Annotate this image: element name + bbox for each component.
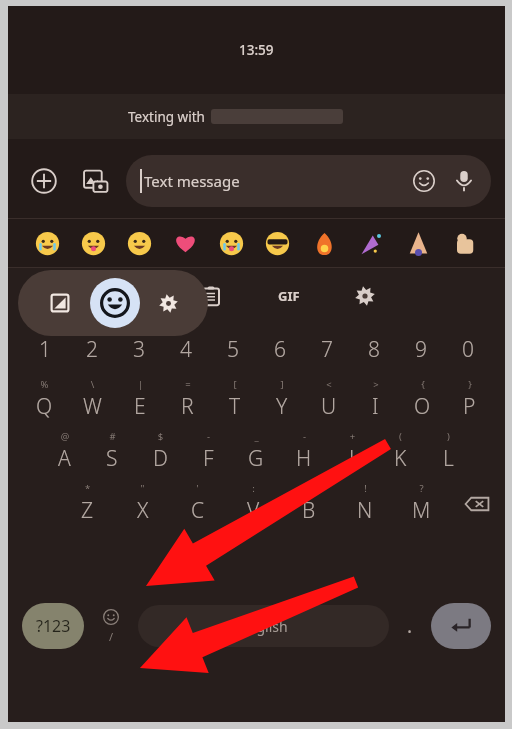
button[interactable]: [ [211,374,258,426]
button[interactable]: Enter [431,603,491,649]
staticText: _ [243,430,270,443]
button[interactable] [208,219,254,267]
staticText: 9 [415,335,427,364]
staticText: A [58,444,71,473]
staticText: { [410,378,436,391]
button[interactable]: 2 [68,324,115,374]
staticText: M [412,496,431,525]
button[interactable]: _ [232,426,280,478]
button[interactable]: Emoji keyboard [84,601,138,651]
button[interactable]: + [328,426,376,478]
button[interactable]: Switch keyboard [42,285,78,321]
button[interactable]: > [352,374,399,426]
button[interactable]: Emoji [90,278,140,328]
button[interactable]: ; [281,478,337,530]
button[interactable]: 4 [162,324,209,374]
button[interactable]: ?123 [22,603,84,649]
staticText: 3 [133,335,145,364]
staticText: H [296,444,312,473]
staticText: ( [387,430,414,443]
button[interactable]: Clipboard [190,275,232,317]
button[interactable]: ) [424,426,472,478]
staticText: " [127,482,158,495]
button[interactable]: Settings [344,275,386,317]
button[interactable]: 6 [256,324,303,374]
button[interactable]: } [446,374,493,426]
button[interactable] [70,219,116,267]
staticText: + [339,430,366,443]
button[interactable]: | [116,374,164,426]
button[interactable]: 8 [350,324,397,374]
button[interactable]: Emoji [409,166,439,196]
button[interactable]: ' [170,478,225,530]
button[interactable]: - [184,426,232,478]
button[interactable] [348,219,395,267]
button[interactable]: GIF [266,273,312,319]
staticText: S [106,444,118,473]
button[interactable]: 5 [209,324,256,374]
button[interactable]: Gallery [74,159,118,203]
button[interactable]: " [115,478,170,530]
button[interactable]: 9 [397,324,444,374]
staticText: / [109,629,114,644]
staticText: X [137,496,149,525]
button[interactable]: ! [337,478,393,530]
staticText: ] [269,378,295,391]
button[interactable]: 3 [115,324,162,374]
button[interactable]: # [88,426,136,478]
button[interactable]: ? [393,478,449,530]
button[interactable] [301,219,348,267]
button[interactable]: English [138,605,389,647]
button[interactable]: 7 [303,324,350,374]
staticText: O [414,392,431,421]
staticText: 7 [321,335,333,364]
button[interactable]: Voice input [449,166,479,196]
button[interactable]: . [389,601,431,651]
button[interactable]: { [399,374,446,426]
button[interactable]: 1 [22,324,68,374]
button[interactable]: ( [376,426,424,478]
staticText: N [357,496,373,525]
button[interactable]: Toolbar [30,275,72,317]
staticText: 2 [86,335,98,364]
staticText: J [349,444,355,473]
staticText: F [203,444,214,473]
staticText: U [321,392,337,421]
button[interactable] [442,219,489,267]
button[interactable]: ] [258,374,305,426]
button[interactable]: \ [68,374,116,426]
button[interactable]: @ [41,426,88,478]
staticText: $ [147,430,174,443]
button[interactable] [254,219,301,267]
staticText: 13:59 [239,41,274,59]
button[interactable]: = [164,374,211,426]
staticText: C [191,496,205,525]
button[interactable] [24,219,70,267]
staticText: - [291,430,318,443]
staticText: K [394,444,407,473]
button[interactable]: Add attachment [22,159,66,203]
staticText: 6 [274,335,286,364]
staticText: Text message [144,171,240,191]
button[interactable] [116,219,162,267]
button[interactable]: $ [136,426,184,478]
staticText: < [316,378,342,391]
button[interactable] [162,219,208,267]
button[interactable]: * [60,478,115,530]
button[interactable]: Text message [126,155,491,207]
staticText: - [195,430,222,443]
staticText: ; [294,482,325,495]
button[interactable] [395,219,442,267]
button[interactable]: : [225,478,281,530]
button[interactable]: Move cursor [110,275,152,317]
button[interactable]: - [280,426,328,478]
staticText: ?123 [36,615,71,637]
button[interactable]: 0 [444,324,491,374]
button[interactable]: Keyboard settings [150,285,186,321]
button[interactable]: Backspace [449,478,505,530]
button[interactable]: < [305,374,352,426]
button[interactable]: % [20,374,68,426]
staticText: 1 [39,335,51,364]
staticText: I [372,392,379,421]
